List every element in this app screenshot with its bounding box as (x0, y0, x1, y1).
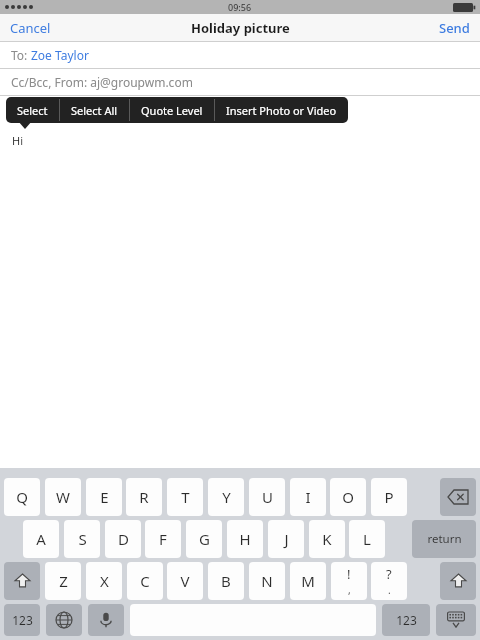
button[interactable]: ? (371, 562, 407, 600)
staticText: To: (11, 47, 31, 63)
staticText: N (261, 571, 273, 591)
staticText: E (100, 487, 109, 507)
button[interactable]: Dictation (88, 604, 124, 636)
button[interactable]: Shift (440, 562, 476, 600)
button[interactable]: K (309, 520, 345, 558)
staticText: 123 (12, 612, 33, 628)
staticText: X (100, 571, 109, 591)
button[interactable]: To: (0, 42, 480, 68)
button[interactable]: Cancel (0, 15, 61, 41)
staticText: P (384, 487, 394, 507)
staticText: L (363, 529, 371, 549)
staticText: T (181, 487, 190, 507)
staticText: H (239, 529, 251, 549)
button[interactable]: O (330, 478, 366, 516)
button[interactable]: J (268, 520, 304, 558)
staticText: Hi (12, 133, 23, 148)
button[interactable]: Insert Photo or Video (215, 97, 348, 123)
staticText: O (342, 487, 354, 507)
staticText: Z (59, 571, 68, 591)
button[interactable]: D (105, 520, 141, 558)
button[interactable]: Shift (4, 562, 40, 600)
staticText: 09:56 (228, 1, 252, 13)
staticText: Insert Photo or Video (226, 103, 337, 118)
button[interactable]: V (167, 562, 203, 600)
button[interactable]: I (290, 478, 326, 516)
staticText: Q (16, 487, 28, 507)
staticText: Y (222, 487, 231, 507)
button[interactable]: S (64, 520, 100, 558)
staticText: M (301, 571, 315, 591)
button[interactable]: Cc/Bcc, From: aj@groupwm.com (0, 69, 480, 95)
button[interactable]: F (145, 520, 181, 558)
button[interactable]: return (412, 520, 476, 558)
button[interactable]: 123 (382, 604, 430, 636)
staticText: Cancel (10, 19, 51, 37)
button[interactable]: B (208, 562, 244, 600)
staticText: . (388, 583, 391, 597)
button[interactable]: 123 (4, 604, 40, 636)
button[interactable]: P (371, 478, 407, 516)
staticText: K (322, 529, 332, 549)
button[interactable]: Quote Level (130, 97, 214, 123)
button[interactable]: U (249, 478, 285, 516)
button[interactable]: Backspace (440, 478, 476, 516)
staticText: W (56, 487, 70, 507)
button[interactable]: W (45, 478, 81, 516)
button[interactable]: Y (208, 478, 244, 516)
staticText: R (139, 487, 149, 507)
staticText: Holiday picture (191, 19, 290, 37)
staticText: S (78, 529, 87, 549)
button[interactable]: T (167, 478, 203, 516)
staticText: G (199, 529, 210, 549)
staticText: , (348, 583, 351, 597)
staticText: I (305, 487, 311, 507)
button[interactable]: N (249, 562, 285, 600)
staticText: Select (17, 103, 48, 118)
staticText: U (262, 487, 273, 507)
button[interactable]: G (186, 520, 222, 558)
button[interactable]: Q (4, 478, 40, 516)
staticText: return (427, 531, 462, 547)
staticText: Select All (71, 103, 118, 118)
button[interactable]: M (290, 562, 326, 600)
button[interactable]: Select (6, 97, 59, 123)
button[interactable]: Z (45, 562, 81, 600)
staticText: J (284, 529, 289, 549)
staticText: 123 (396, 612, 417, 628)
staticText: B (221, 571, 231, 591)
staticText: Send (439, 19, 470, 37)
button[interactable]: X (86, 562, 122, 600)
staticText: ? (386, 565, 392, 583)
button[interactable]: Change language (46, 604, 82, 636)
button[interactable]: H (227, 520, 263, 558)
button[interactable]: Send (429, 15, 480, 41)
button[interactable]: Hide keyboard (436, 604, 476, 636)
button[interactable]: L (349, 520, 385, 558)
staticText: V (180, 571, 190, 591)
staticText: Zoe Taylor (31, 47, 89, 63)
button[interactable]: R (126, 478, 162, 516)
button[interactable]: ! (331, 562, 367, 600)
staticText: ! (347, 565, 351, 583)
staticText: Cc/Bcc, From: aj@groupwm.com (11, 74, 193, 90)
button[interactable]: A (23, 520, 59, 558)
staticText: A (36, 529, 46, 549)
staticText: F (159, 529, 167, 549)
button[interactable]: E (86, 478, 122, 516)
staticText: D (118, 529, 129, 549)
button[interactable]: Select All (60, 97, 129, 123)
button[interactable]: C (127, 562, 163, 600)
staticText: Quote Level (141, 103, 203, 118)
staticText: C (140, 571, 150, 591)
